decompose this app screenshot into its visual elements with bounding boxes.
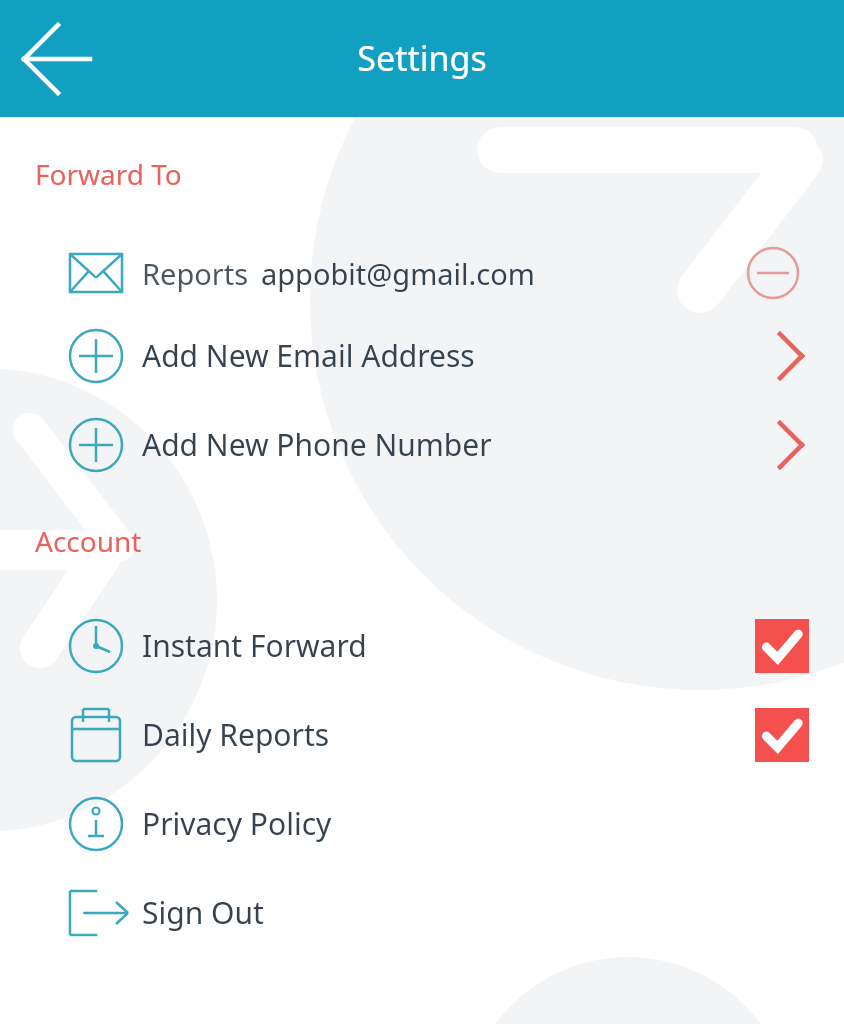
staticText: Privacy Policy <box>142 803 332 844</box>
staticText: Settings <box>357 35 487 81</box>
button[interactable]: Privacy Policy <box>0 779 844 868</box>
staticText: Add New Phone Number <box>142 424 492 465</box>
staticText: Reports <box>142 254 249 293</box>
button[interactable]: Instant Forward <box>0 601 844 690</box>
button[interactable]: Add New Phone Number <box>0 400 844 489</box>
button[interactable]: Back <box>20 27 84 91</box>
staticText: Add New Email Address <box>142 335 475 376</box>
staticText: Sign Out <box>142 892 264 933</box>
button[interactable]: Daily Reports <box>0 690 844 779</box>
staticText: Daily Reports <box>142 714 330 755</box>
staticText: Account <box>35 522 142 560</box>
button[interactable]: Add New Email Address <box>0 311 844 400</box>
button[interactable]: Daily Reports toggle <box>754 707 810 763</box>
staticText: Instant Forward <box>142 625 367 666</box>
staticText: appobit@gmail.com <box>261 254 535 293</box>
staticText: Forward To <box>35 155 182 193</box>
button[interactable]: Reports <box>0 235 844 311</box>
button[interactable]: Instant Forward toggle <box>754 618 810 674</box>
button[interactable]: Sign Out <box>0 868 844 957</box>
button[interactable]: Remove <box>742 242 804 304</box>
